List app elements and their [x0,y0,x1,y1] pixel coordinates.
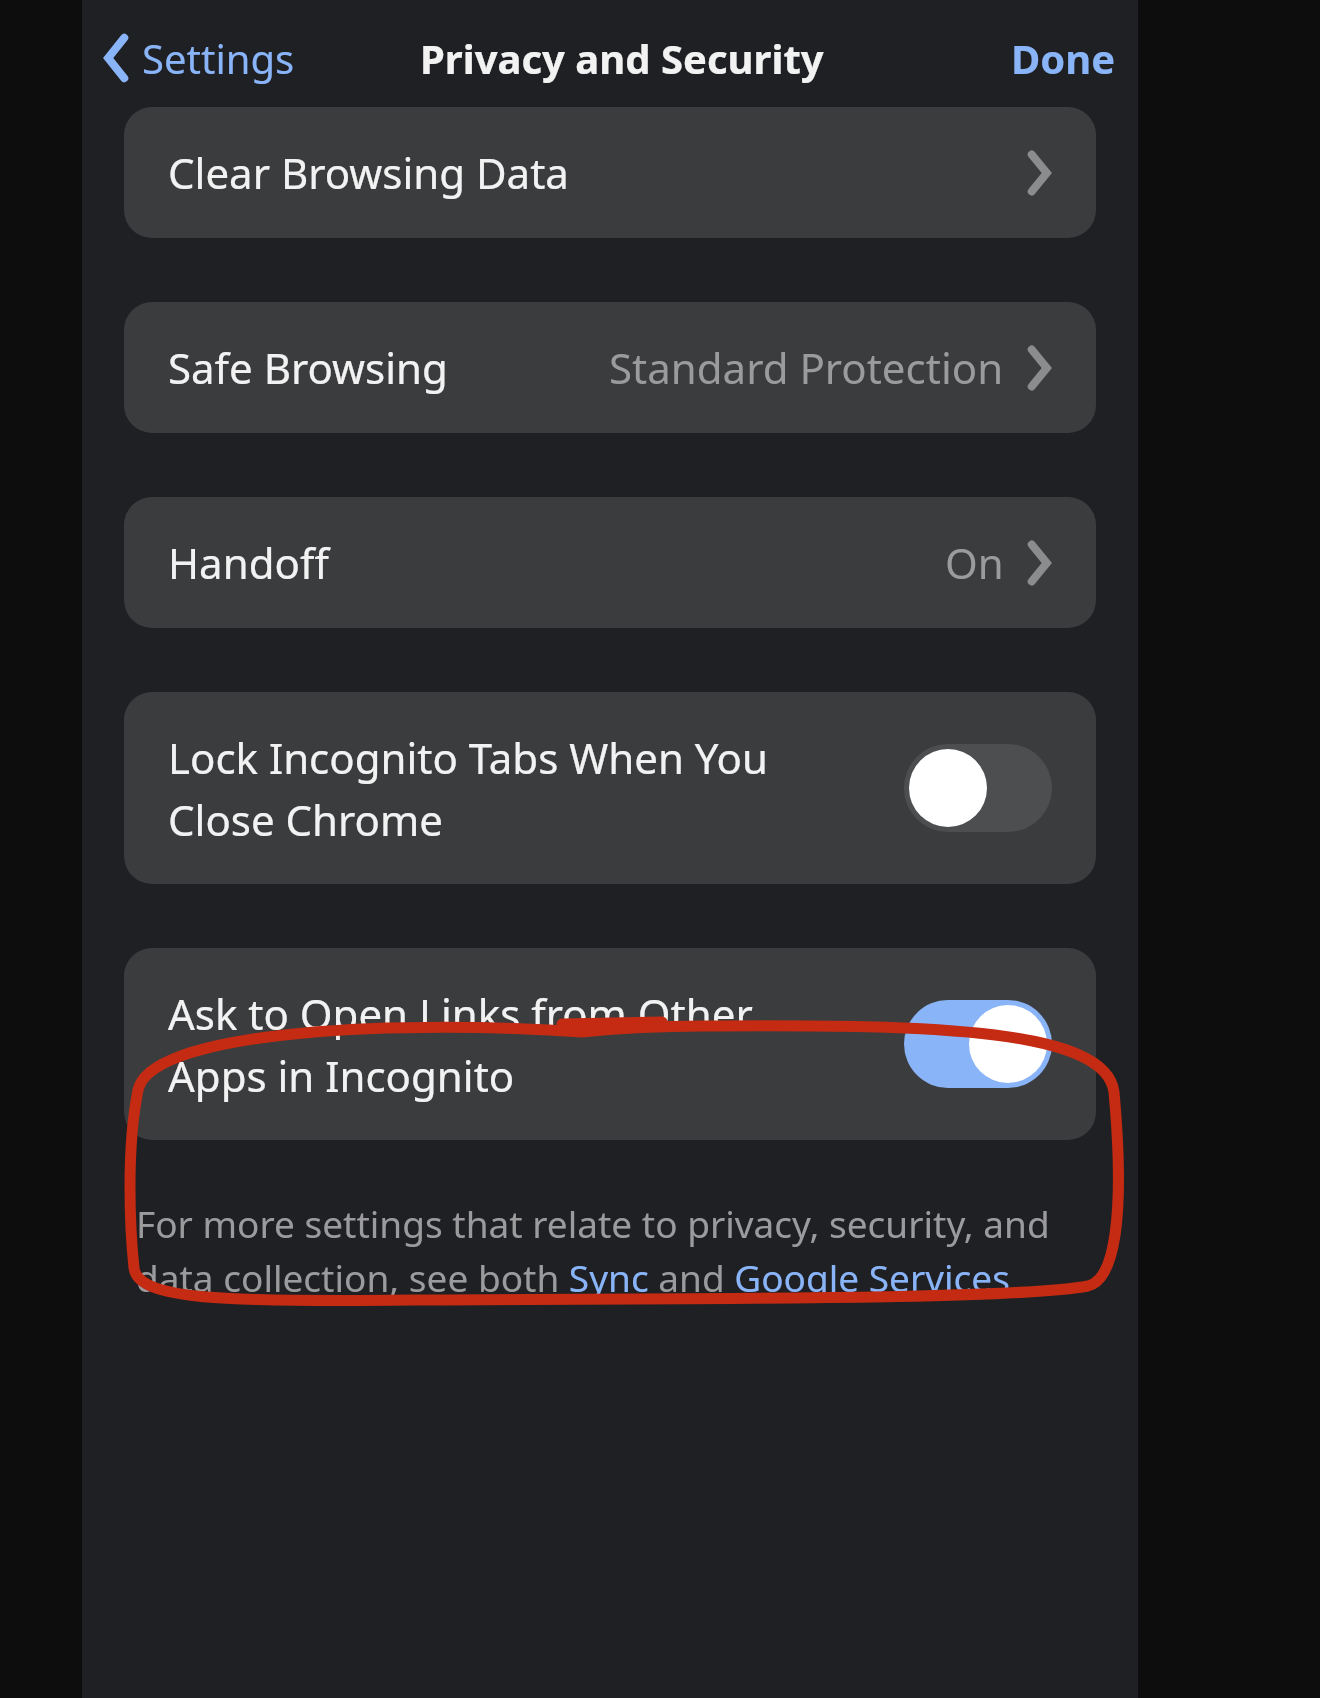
button[interactable]: Ask to Open Links from Other Apps in Inc… [124,948,1096,1140]
staticText: On [945,534,1004,591]
staticText: Settings [142,31,295,85]
staticText: Done [1011,31,1116,85]
staticText: Handoff [168,534,329,591]
button[interactable]: Done [1003,23,1124,93]
staticText: Ask to Open Links from Other Apps in Inc… [168,985,753,1104]
staticText: Standard Protection [609,339,1004,396]
button[interactable]: Safe Browsing [124,302,1096,433]
button[interactable]: Clear Browsing Data [124,107,1096,238]
button[interactable]: Lock Incognito Tabs When You Close Chrom… [124,692,1096,884]
staticText: Lock Incognito Tabs When You Close Chrom… [168,729,768,848]
other: Open [1026,541,1052,585]
staticText: For more settings that relate to privacy… [136,1198,1050,1303]
button[interactable]: Toggle on [904,1000,1052,1088]
other: Open [1026,151,1052,195]
button[interactable]: Settings [98,23,301,93]
staticText: Safe Browsing [168,339,448,396]
staticText: Clear Browsing Data [168,144,569,201]
button[interactable]: Handoff [124,497,1096,628]
other: Open [1026,346,1052,390]
button[interactable]: Toggle off [904,744,1052,832]
staticText: Privacy and Security [420,31,824,85]
